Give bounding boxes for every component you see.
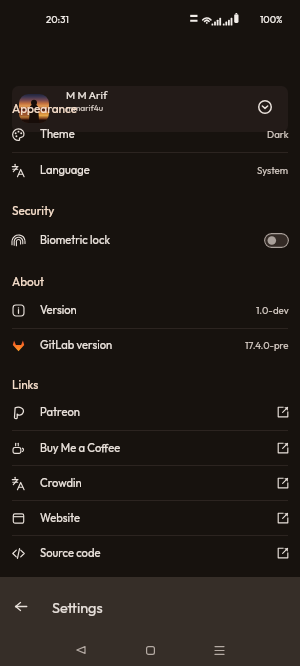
staticText: 20:31 — [46, 13, 69, 25]
staticText: 17.4.0-pre — [245, 339, 289, 351]
staticText: 1.0-dev — [256, 304, 289, 316]
staticText: About — [12, 274, 45, 289]
button[interactable]: Back — [64, 634, 96, 666]
button[interactable]: Source code — [0, 536, 300, 570]
button[interactable]: M M Arif — [12, 86, 288, 132]
staticText: Biometric lock — [40, 233, 110, 247]
staticText: Patreon — [40, 405, 80, 419]
staticText: mmarif4u — [66, 103, 104, 114]
staticText: GitLab version — [40, 338, 113, 352]
staticText: Source code — [40, 546, 101, 560]
button[interactable]: GitLab version — [0, 328, 300, 362]
button[interactable]: Crowdin — [0, 466, 300, 500]
button[interactable]: Website — [0, 501, 300, 535]
button[interactable]: Language — [0, 153, 300, 187]
staticText: Website — [40, 511, 80, 525]
staticText: Security — [12, 203, 55, 218]
staticText: Dark — [267, 128, 289, 140]
staticText: Theme — [40, 127, 75, 141]
staticText: Version — [40, 303, 77, 317]
button[interactable]: Expand account — [258, 100, 272, 114]
button[interactable]: Biometric lock — [0, 223, 300, 257]
staticText: Links — [12, 377, 39, 392]
staticText: M M Arif — [66, 88, 108, 102]
button[interactable]: Back — [9, 594, 33, 618]
button[interactable]: Patreon — [0, 395, 300, 429]
staticText: Appearance — [12, 101, 77, 116]
button[interactable]: Home — [134, 634, 166, 666]
button[interactable]: Buy Me a Coffee — [0, 431, 300, 465]
staticText: Settings — [52, 599, 103, 617]
button[interactable]: Toggle biometric lock — [264, 233, 289, 248]
staticText: 100% — [260, 13, 283, 25]
staticText: Language — [40, 163, 90, 177]
staticText: Crowdin — [40, 476, 82, 490]
button[interactable]: Recent apps — [203, 634, 235, 666]
staticText: System — [257, 164, 289, 176]
staticText: Buy Me a Coffee — [40, 441, 121, 455]
button[interactable]: Version — [0, 293, 300, 327]
button[interactable]: Theme — [0, 117, 300, 151]
